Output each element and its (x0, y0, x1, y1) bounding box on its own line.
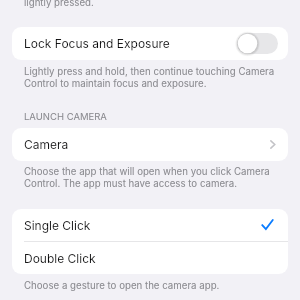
staticText: Lock Focus and Exposure (24, 36, 170, 51)
button[interactable]: Lock Focus and Exposure (12, 27, 288, 60)
button[interactable]: Camera (12, 128, 288, 161)
staticText: Double Click (24, 251, 96, 266)
staticText: Single Click (24, 218, 91, 233)
staticText: LAUNCH CAMERA (24, 111, 107, 122)
staticText: Camera (24, 137, 69, 152)
button[interactable]: Double Click (12, 242, 288, 274)
staticText: lightly pressed. (24, 0, 94, 9)
staticText: Choose the app that will open when you c… (24, 166, 270, 190)
button[interactable]: Single Click (12, 209, 288, 242)
staticText: Lightly press and hold, then continue to… (24, 66, 275, 90)
staticText: Choose a gesture to open the camera app. (24, 280, 220, 292)
button[interactable]: Lock Focus and Exposure, off (237, 33, 278, 54)
